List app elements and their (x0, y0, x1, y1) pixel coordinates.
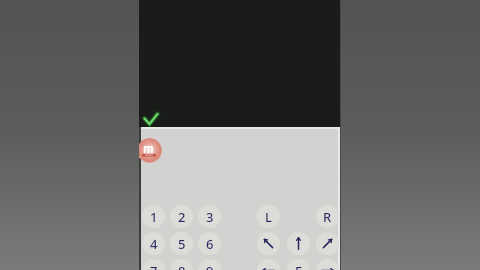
button[interactable]: 5 (170, 232, 193, 255)
staticText: 1 (150, 208, 158, 226)
button[interactable]: 9 (198, 259, 221, 270)
staticText: 4 (150, 235, 158, 253)
button[interactable]: 1 (142, 205, 165, 228)
button[interactable] (287, 232, 310, 255)
button[interactable]: 4 (142, 232, 165, 255)
staticText: R (323, 208, 332, 226)
button[interactable] (257, 232, 280, 255)
button[interactable]: R (316, 205, 339, 228)
button[interactable]: L (257, 205, 280, 228)
button[interactable] (316, 259, 339, 270)
staticText: 8 (178, 262, 186, 270)
staticText: 5 (178, 235, 186, 253)
button[interactable]: 2 (170, 205, 193, 228)
staticText: F (295, 262, 302, 270)
button[interactable] (316, 232, 339, 255)
staticText: 3 (206, 208, 214, 226)
staticText: 9 (206, 262, 214, 270)
staticText: L (265, 208, 272, 226)
button[interactable]: 8 (170, 259, 193, 270)
staticText: 6 (206, 235, 214, 253)
button[interactable]: 7 (142, 259, 165, 270)
button[interactable]: F (287, 259, 310, 270)
button[interactable] (257, 259, 280, 270)
button[interactable]: 3 (198, 205, 221, 228)
staticText: 7 (150, 262, 158, 270)
staticText: 2 (178, 208, 186, 226)
button[interactable] (139, 138, 162, 163)
button[interactable]: 6 (198, 232, 221, 255)
